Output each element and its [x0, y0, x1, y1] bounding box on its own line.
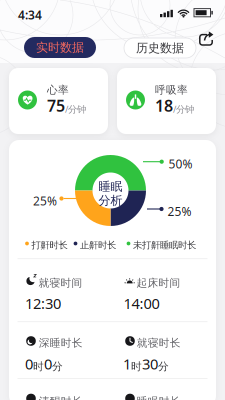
staticText: 呼吸率	[155, 83, 188, 97]
staticText: 时	[131, 360, 142, 373]
staticText: 深睡时长	[39, 336, 83, 350]
staticText: 0	[44, 354, 52, 373]
staticText: 就寝时间	[38, 276, 82, 289]
staticText: 0	[25, 354, 33, 373]
staticText: 25%	[33, 193, 57, 209]
staticText: 4:34	[18, 7, 42, 23]
button[interactable]: 历史数据	[124, 38, 196, 58]
staticText: 18	[155, 95, 173, 116]
button[interactable]: 心率	[9, 68, 108, 134]
staticText: /分钟	[173, 103, 194, 115]
staticText: 未打鼾睡眠时长	[133, 239, 196, 251]
staticText: 止鼾时长	[80, 239, 116, 251]
staticText: 分析	[98, 193, 122, 208]
staticText: 分	[158, 360, 169, 373]
staticText: 1	[123, 354, 131, 373]
staticText: /分钟	[65, 103, 86, 115]
staticText: 起床时间	[136, 276, 180, 289]
staticText: 时	[33, 360, 44, 373]
button[interactable]: 实时数据	[24, 37, 96, 58]
staticText: 分	[52, 360, 63, 373]
staticText: 30	[142, 354, 158, 373]
button[interactable]	[196, 28, 216, 48]
staticText: 心率	[47, 83, 69, 97]
staticText: 历史数据	[136, 41, 184, 55]
staticText: 清醒时长	[39, 395, 83, 400]
staticText: 14:00	[123, 293, 159, 313]
staticText: 打鼾时长	[31, 239, 67, 251]
staticText: 睡眠时长	[137, 395, 181, 400]
button[interactable]: 呼吸率	[117, 68, 216, 134]
staticText: 50%	[168, 156, 192, 172]
staticText: 实时数据	[36, 40, 84, 55]
staticText: 睡眠	[98, 179, 122, 194]
staticText: 25%	[167, 203, 191, 219]
staticText: 12:30	[25, 293, 61, 313]
staticText: 75	[47, 95, 65, 116]
staticText: 就寝时长	[137, 336, 181, 350]
